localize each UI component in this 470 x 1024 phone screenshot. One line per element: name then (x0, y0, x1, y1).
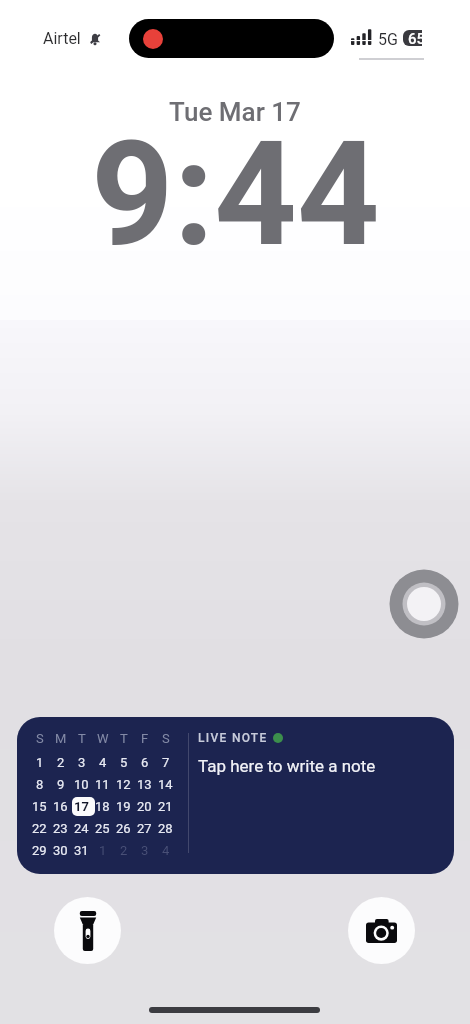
staticText: 9:44 (91, 110, 380, 279)
staticText: 19 (116, 799, 131, 814)
staticText: 30 (53, 843, 68, 858)
staticText: 22 (32, 821, 47, 836)
staticText: 1 (36, 755, 44, 770)
staticText: T (120, 731, 128, 746)
staticText: 17 (74, 799, 89, 814)
staticText: F (141, 731, 149, 746)
staticText: 9 (57, 777, 65, 792)
staticText: 2 (120, 843, 128, 858)
staticText: 21 (158, 799, 173, 814)
staticText: 2 (57, 755, 65, 770)
staticText: LIVE NOTE (198, 731, 268, 745)
button[interactable]: Camera (348, 897, 415, 964)
staticText: Airtel (43, 29, 81, 48)
staticText: Tue Mar 17 (169, 97, 301, 127)
button[interactable]: LIVE NOTE (189, 717, 454, 874)
staticText: 16 (53, 799, 68, 814)
staticText: Tap here to write a note (198, 756, 376, 776)
staticText: 4 (162, 843, 170, 858)
staticText: T (78, 731, 86, 746)
staticText: 6 (141, 755, 149, 770)
staticText: 4 (99, 755, 107, 770)
staticText: 26 (116, 821, 131, 836)
staticText: 65 (408, 30, 422, 46)
staticText: 10 (74, 777, 89, 792)
staticText: 11 (95, 777, 110, 792)
staticText: 31 (74, 843, 89, 858)
staticText: 29 (32, 843, 47, 858)
staticText: 13 (137, 777, 152, 792)
staticText: S (162, 731, 170, 746)
staticText: 27 (137, 821, 152, 836)
staticText: 5G (378, 30, 398, 49)
staticText: 28 (158, 821, 173, 836)
staticText: 3 (78, 755, 86, 770)
staticText: 24 (74, 821, 89, 836)
button[interactable]: Calendar, March 17 (17, 717, 188, 874)
staticText: 14 (158, 777, 173, 792)
staticText: 5 (120, 755, 128, 770)
staticText: 7 (162, 755, 170, 770)
staticText: 3 (141, 843, 149, 858)
staticText: 8 (36, 777, 44, 792)
staticText: 12 (116, 777, 131, 792)
staticText: 23 (53, 821, 68, 836)
staticText: 25 (95, 821, 110, 836)
staticText: 15 (32, 799, 47, 814)
button[interactable]: Flashlight (54, 897, 121, 964)
staticText: S (36, 731, 44, 746)
staticText: M (55, 731, 67, 746)
staticText: 1 (99, 843, 107, 858)
staticText: W (97, 731, 109, 746)
staticText: 18 (95, 799, 110, 814)
staticText: 20 (137, 799, 152, 814)
